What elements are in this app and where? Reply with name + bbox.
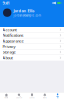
button[interactable]: Jordan Ellis: [0, 8, 64, 17]
button[interactable]: Alerts: [38, 92, 51, 100]
staticText: Me: [57, 97, 59, 99]
button[interactable]: Search: [13, 92, 26, 100]
button[interactable]: Storage: [0, 49, 64, 55]
button[interactable]: Me: [51, 92, 64, 100]
button[interactable]: Saved: [26, 92, 38, 100]
staticText: Notifications: [3, 33, 24, 38]
staticText: Storage: [3, 49, 16, 55]
button[interactable]: Privacy: [0, 44, 64, 49]
staticText: Account: [3, 27, 17, 32]
button[interactable]: Appearance: [0, 38, 64, 44]
staticText: Search: [16, 97, 22, 99]
staticText: Appearance: [3, 38, 24, 43]
staticText: Home: [4, 97, 8, 99]
button[interactable]: Home: [0, 92, 13, 100]
staticText: Alerts: [43, 97, 47, 99]
staticText: Saved: [29, 97, 34, 99]
button[interactable]: About: [0, 55, 64, 61]
staticText: 9:41: [2, 0, 9, 6]
staticText: jordan@example.com: [14, 14, 41, 17]
button[interactable]: Account: [0, 27, 64, 33]
staticText: Privacy: [3, 44, 16, 49]
staticText: About: [3, 55, 13, 60]
button[interactable]: Notifications: [0, 33, 64, 38]
staticText: Jordan Ellis: [14, 8, 35, 13]
